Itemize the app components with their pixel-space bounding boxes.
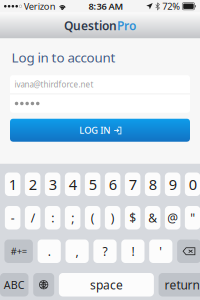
button[interactable]: LOG IN — [10, 119, 190, 142]
staticText: Question — [64, 17, 117, 33]
staticText: ; — [71, 210, 74, 226]
staticText: - — [11, 210, 15, 226]
staticText: ) — [111, 210, 115, 226]
staticText: space — [90, 277, 123, 293]
button[interactable]: 0 — [185, 172, 200, 196]
button[interactable]: 8 — [145, 172, 160, 196]
button[interactable]: ( — [85, 206, 100, 229]
button[interactable]: " — [185, 206, 200, 229]
button[interactable]: . — [38, 239, 61, 263]
staticText: 1 — [9, 174, 17, 194]
button[interactable]: @ — [165, 206, 180, 229]
button[interactable]: return — [159, 273, 200, 296]
button[interactable]: ! — [121, 239, 144, 263]
button[interactable]: 7 — [125, 172, 140, 196]
button[interactable]: / — [25, 206, 40, 229]
staticText: @ — [167, 210, 178, 226]
staticText: 0 — [189, 174, 197, 194]
staticText: Log in to account — [11, 48, 115, 66]
staticText: Verizon — [22, 0, 56, 12]
staticText: 6 — [109, 174, 117, 194]
staticText: 8 — [149, 174, 157, 194]
button[interactable]: ) — [105, 206, 120, 229]
button[interactable]: Next keyboard — [33, 273, 54, 296]
staticText: / — [31, 210, 35, 226]
staticText: ' — [159, 243, 162, 259]
staticText: : — [51, 210, 54, 226]
staticText: return — [164, 277, 199, 293]
staticText: ! — [131, 243, 134, 259]
staticText: 7 — [129, 174, 137, 194]
button[interactable]: #+= — [4, 239, 33, 263]
button[interactable]: 6 — [105, 172, 120, 196]
staticText: LOG IN — [79, 124, 110, 136]
staticText: 8:36 AM — [88, 0, 123, 12]
button[interactable]: $ — [125, 206, 140, 229]
button[interactable]: ' — [149, 239, 172, 263]
staticText: " — [190, 210, 195, 226]
staticText: 9 — [169, 174, 177, 194]
button[interactable]: 5 — [85, 172, 100, 196]
button[interactable]: : — [45, 206, 60, 229]
staticText: ? — [102, 243, 107, 259]
staticText: 3 — [49, 174, 57, 194]
staticText: 5 — [89, 174, 97, 194]
staticText: 2 — [29, 174, 37, 194]
button[interactable]: ABC — [0, 273, 28, 296]
button[interactable]: - — [5, 206, 20, 229]
button[interactable]: & — [145, 206, 160, 229]
button[interactable]: 2 — [25, 172, 40, 196]
staticText: ivana@thirdforce.net — [14, 79, 93, 90]
staticText: ( — [91, 210, 95, 226]
button[interactable]: ; — [65, 206, 80, 229]
staticText: . — [48, 243, 51, 259]
button[interactable]: 4 — [65, 172, 80, 196]
staticText: 4 — [69, 174, 77, 194]
button[interactable]: ? — [93, 239, 117, 263]
staticText: & — [148, 210, 157, 226]
staticText: ABC — [4, 278, 25, 292]
staticText: #+= — [11, 245, 27, 257]
button[interactable]: 1 — [5, 172, 20, 196]
staticText: Pro — [117, 17, 136, 33]
staticText: , — [76, 243, 79, 259]
button[interactable]: , — [65, 239, 89, 263]
staticText: 72% — [162, 0, 180, 12]
button[interactable]: 3 — [45, 172, 60, 196]
staticText: $ — [129, 210, 136, 226]
button[interactable]: Delete — [177, 239, 200, 263]
button[interactable]: 9 — [165, 172, 180, 196]
button[interactable]: space — [59, 273, 154, 296]
